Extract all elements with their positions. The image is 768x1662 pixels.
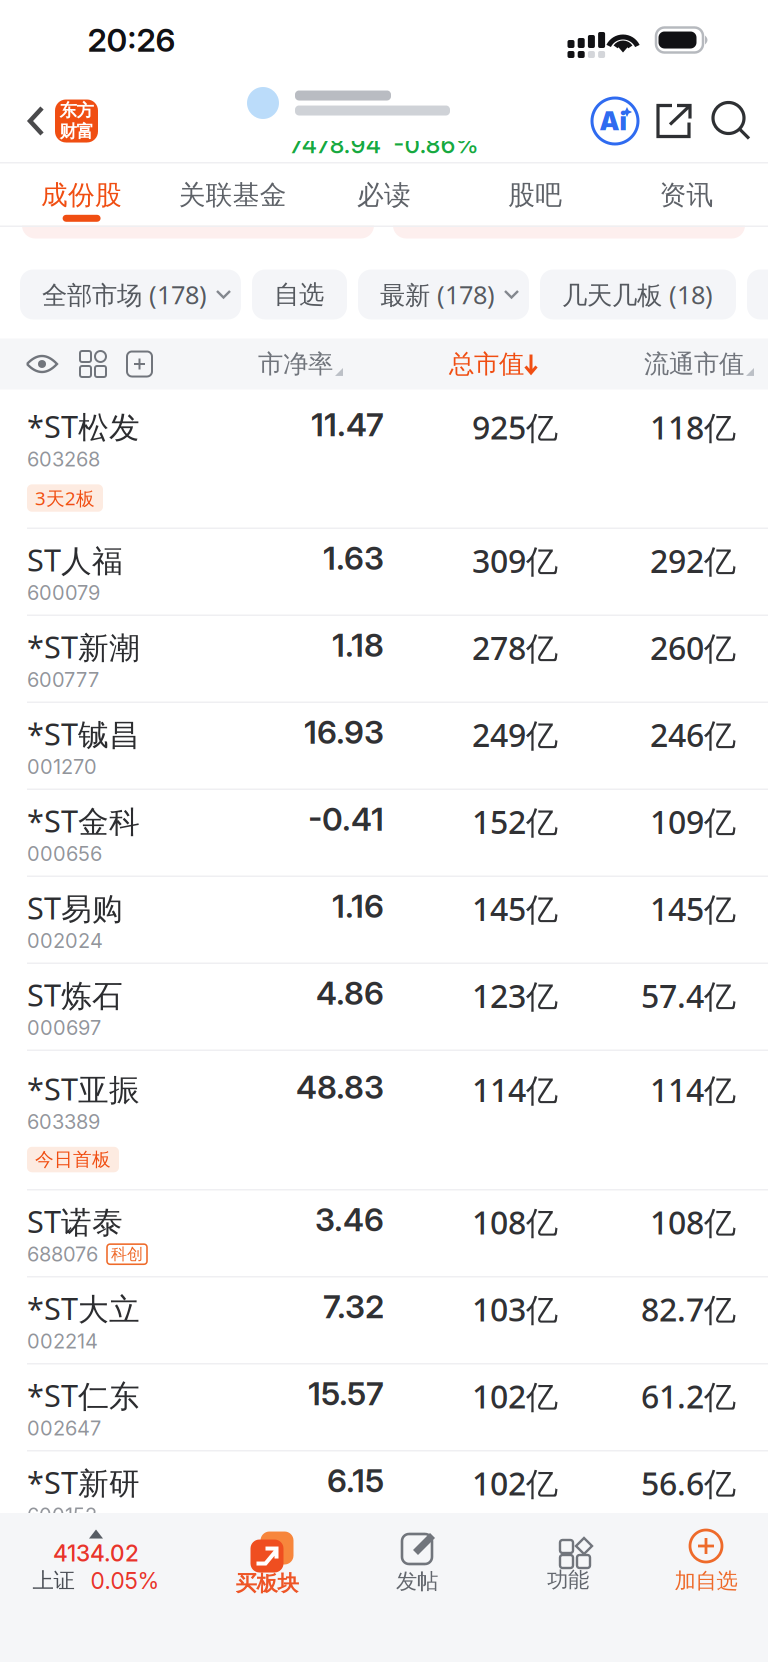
staticText: 118亿 [650,405,736,449]
button[interactable]: 股吧 [460,163,611,225]
staticText: 603268 [27,447,100,471]
staticText: 股吧 [508,178,562,212]
button[interactable]: *ST金科 [0,790,768,877]
staticText: 56.6亿 [641,1461,736,1505]
button[interactable]: ST炼石 [0,964,768,1051]
button[interactable]: 加自选 [644,1529,768,1594]
button[interactable]: 功能 [492,1530,644,1593]
staticText: 买板块 [235,1570,298,1597]
button[interactable]: 分享 [639,103,709,138]
button[interactable]: 最新 (178) [358,269,529,319]
staticText: 145亿 [650,887,736,930]
button[interactable]: 自选 [252,269,347,319]
staticText: 603389 [27,1110,100,1134]
staticText: *ST亚振 [27,1068,140,1110]
staticText: 16.93 [304,713,384,751]
staticText: 1.16 [332,887,384,925]
button[interactable]: *ST松发 [0,389,768,529]
staticText: 功能 [547,1566,589,1593]
button[interactable]: *ST铖昌 [0,703,768,790]
button[interactable]: 添加列 [127,351,152,376]
staticText: 61.2亿 [641,1374,736,1418]
staticText: 002647 [27,1416,101,1440]
staticText: ST人福 [27,539,123,581]
staticText: 11.47 [311,405,384,444]
staticText: 几天几板 (18) [562,277,713,312]
staticText: 82.7亿 [641,1287,736,1331]
staticText: 688076 [27,1242,98,1266]
button[interactable]: *ST新研 [0,1451,768,1538]
button[interactable]: 隐藏列 [26,353,58,375]
staticText: 114亿 [650,1068,736,1111]
staticText: 103亿 [472,1287,558,1331]
staticText: 260亿 [650,626,736,669]
staticText: *ST铖昌 [27,713,140,755]
button[interactable]: 资讯 [611,163,762,225]
button[interactable]: 搜索 [709,102,750,139]
staticText: 市净率 [258,348,333,380]
staticText: 925亿 [472,405,558,449]
button[interactable]: 流通市值 [644,348,754,380]
button[interactable]: 关联基金 [157,163,308,225]
staticText: 000697 [27,1016,101,1040]
button[interactable]: 4134.02 [0,1529,192,1594]
button[interactable]: ST人福 [0,529,768,616]
staticText: 1.18 [332,626,384,664]
staticText: 关联基金 [179,178,287,212]
staticText: 152亿 [472,800,558,843]
staticText: -0.41 [308,800,384,838]
button[interactable]: 成份股 [6,163,157,225]
staticText: 7.32 [323,1287,384,1326]
staticText: 上证 [32,1567,74,1594]
button[interactable]: 全部市场 (178) [20,269,241,319]
staticText: 309亿 [472,539,558,582]
staticText: 全部市场 (178) [42,277,207,312]
staticText: 东方 [59,100,93,121]
staticText: 4134.02 [53,1539,139,1567]
staticText: 600777 [27,668,99,692]
staticText: *ST新研 [27,1461,140,1503]
button[interactable]: *ST亚振 [0,1051,768,1190]
staticText: 600152 [27,1503,97,1527]
staticText: 102亿 [472,1461,558,1505]
button[interactable]: 东方财富 [55,99,98,142]
staticText: 成份股 [41,178,122,212]
button[interactable]: 布局 [80,351,106,377]
button[interactable]: AI 助手 [591,97,639,145]
button[interactable]: 发帖 [342,1529,492,1595]
staticText: *ST仁东 [27,1374,140,1416]
staticText: ST诺泰 [27,1200,123,1242]
button[interactable]: 总市值 [449,348,538,380]
staticText: 必读 [357,178,411,212]
staticText: 3天2板 [35,485,95,511]
staticText: 财富 [59,120,93,142]
staticText: 108亿 [650,1200,736,1244]
staticText: *ST大立 [27,1287,140,1329]
staticText: 002214 [27,1329,98,1353]
button[interactable]: 市净率 [258,348,343,380]
staticText: 57.4亿 [641,974,736,1017]
button[interactable]: 买板块 [192,1527,342,1597]
staticText: 7478.94 -0.86% [289,130,478,159]
button[interactable]: ST诺泰 [0,1190,768,1277]
button[interactable]: 返回 [17,92,55,150]
staticText: 15.57 [308,1374,384,1413]
staticText: *ST新潮 [27,626,140,668]
staticText: 292亿 [650,539,736,582]
staticText: 123亿 [472,974,558,1017]
button[interactable]: *ST新潮 [0,616,768,703]
button[interactable]: ST易购 [0,877,768,964]
button[interactable]: 必读 [308,163,460,225]
staticText: 总市值 [449,348,524,380]
staticText: 4.86 [316,974,384,1012]
staticText: *ST松发 [27,405,140,447]
button[interactable]: 几天几板 (18) [540,269,736,319]
button[interactable]: *ST大立 [0,1277,768,1364]
staticText: 科创 [111,1244,143,1264]
staticText: 002024 [27,929,103,953]
button[interactable]: *ST仁东 [0,1364,768,1451]
staticText: 3.46 [315,1200,384,1239]
staticText: 发帖 [396,1568,438,1595]
staticText: 1.63 [323,539,384,577]
